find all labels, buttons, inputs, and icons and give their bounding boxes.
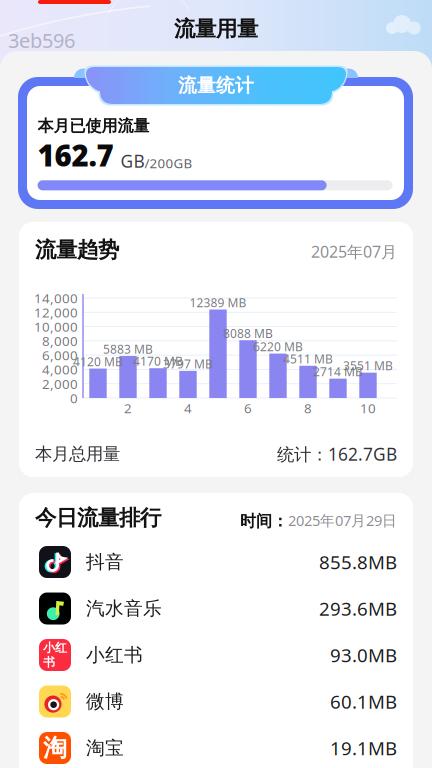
staticText: 4: [184, 399, 192, 417]
staticText: 小红书: [86, 643, 143, 666]
staticText: 6: [244, 399, 252, 417]
staticText: 3551 MB: [343, 358, 393, 374]
staticText: 8: [304, 399, 312, 417]
button[interactable]: 抖音: [19, 539, 413, 585]
staticText: GB: [121, 149, 145, 172]
staticText: 12389 MB: [189, 294, 246, 310]
staticText: 4170 MB: [133, 353, 183, 369]
staticText: 14,000: [34, 289, 78, 307]
staticText: 流量趋势: [35, 237, 119, 263]
staticText: 2025年07月29日: [288, 510, 397, 530]
staticText: 12,000: [34, 303, 78, 321]
staticText: 淘宝: [86, 736, 124, 759]
staticText: 5883 MB: [103, 341, 153, 357]
button[interactable]: 微博: [19, 678, 413, 725]
staticText: 8088 MB: [223, 325, 273, 341]
staticText: 4511 MB: [283, 351, 333, 367]
button[interactable]: 小红书: [19, 632, 413, 678]
staticText: 60.1MB: [330, 689, 397, 714]
button[interactable]: 汽水音乐: [19, 585, 413, 632]
staticText: /200GB: [145, 154, 193, 172]
staticText: 2,000: [42, 375, 78, 393]
staticText: 4120 MB: [73, 354, 123, 369]
staticText: 3797 MB: [163, 356, 213, 372]
staticText: 抖音: [86, 550, 124, 573]
staticText: 0: [70, 389, 78, 407]
staticText: 时间：: [240, 511, 288, 531]
staticText: 293.6MB: [319, 596, 397, 621]
staticText: 2: [124, 399, 132, 417]
staticText: 6,000: [42, 346, 78, 364]
staticText: 2714 MB: [313, 364, 363, 379]
staticText: 汽水音乐: [86, 597, 162, 620]
staticText: 淘: [43, 733, 67, 763]
staticText: 小红书: [43, 640, 67, 670]
staticText: 流量用量: [174, 16, 258, 42]
staticText: 8,000: [42, 332, 78, 350]
staticText: 3eb596: [8, 27, 75, 54]
staticText: 93.0MB: [330, 643, 397, 667]
staticText: 微博: [86, 690, 124, 713]
staticText: 本月总用量: [35, 443, 120, 465]
staticText: 10: [360, 399, 376, 417]
staticText: 19.1MB: [330, 736, 397, 760]
staticText: 统计：162.7GB: [277, 442, 397, 465]
staticText: 855.8MB: [319, 550, 397, 574]
staticText: 今日流量排行: [35, 505, 161, 531]
staticText: 162.7: [38, 135, 114, 174]
staticText: 10,000: [34, 318, 78, 335]
staticText: 6220 MB: [253, 339, 303, 354]
staticText: 本月已使用流量: [38, 116, 150, 136]
staticText: 2025年07月: [311, 241, 397, 262]
staticText: 流量统计: [178, 74, 254, 97]
staticText: 4,000: [42, 361, 78, 378]
button[interactable]: 淘: [19, 725, 413, 768]
